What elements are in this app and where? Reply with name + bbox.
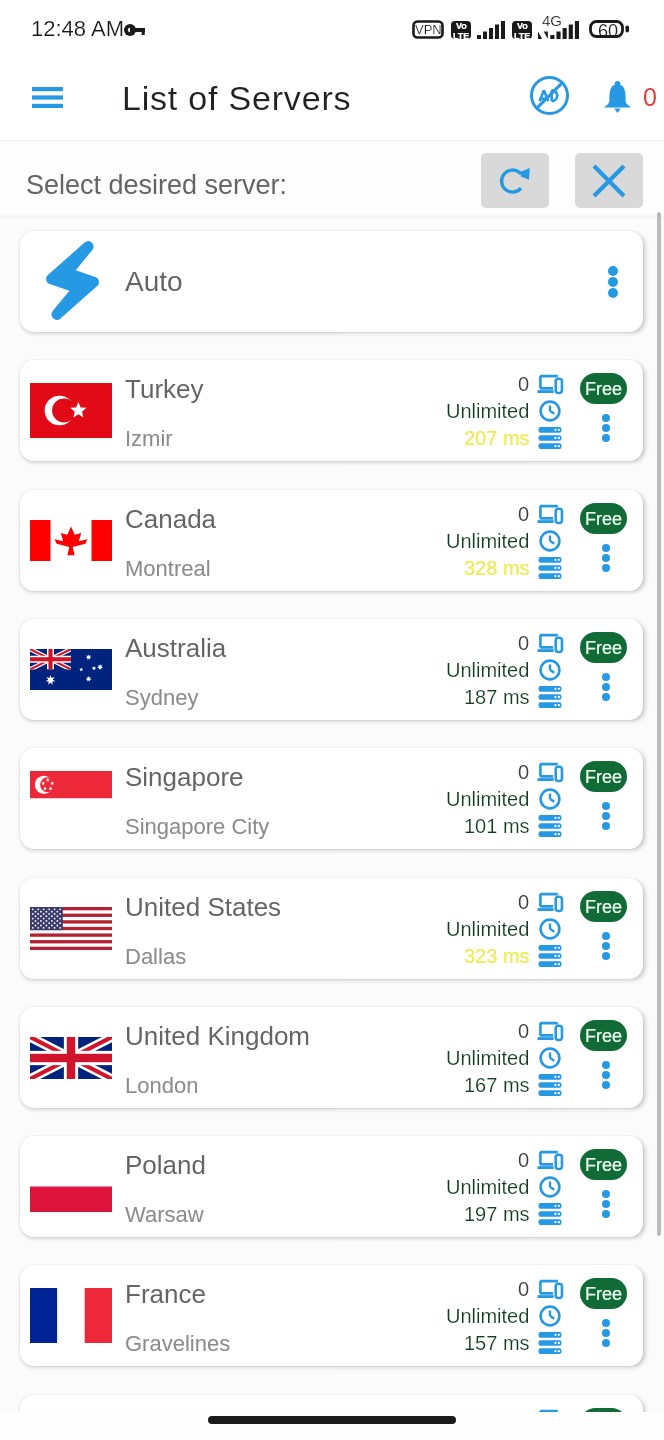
button[interactable]: Menu [10, 64, 84, 130]
staticText: Dallas [125, 944, 187, 969]
staticText: Singapore City [125, 814, 270, 839]
button[interactable]: Free [580, 761, 627, 792]
staticText: 0 [518, 1278, 530, 1300]
staticText: 323 ms [464, 945, 530, 967]
staticText: Warsaw [125, 1202, 204, 1227]
button[interactable]: More options [588, 664, 623, 710]
staticText: Australia [125, 633, 227, 662]
button[interactable]: Australia [20, 619, 643, 720]
button[interactable]: Free [580, 1408, 627, 1439]
button[interactable]: More options [588, 1181, 623, 1227]
staticText: 197 ms [464, 1203, 530, 1225]
button[interactable]: More options [588, 1052, 623, 1098]
staticText: Sydney [125, 685, 199, 710]
staticText: 12:48 AM [31, 16, 124, 41]
staticText: Unlimited [446, 918, 530, 940]
button[interactable]: Free [580, 1020, 627, 1051]
staticText: 0 [518, 1020, 530, 1042]
staticText: Canada [125, 504, 217, 533]
button[interactable]: Canada [20, 490, 643, 591]
staticText: 0 [518, 1149, 530, 1171]
button[interactable]: Free [580, 373, 627, 404]
staticText: London [125, 1073, 199, 1098]
staticText: Poland [125, 1150, 206, 1179]
button[interactable]: France [20, 1265, 643, 1366]
staticText: 101 ms [464, 815, 530, 837]
staticText: United Kingdom [125, 1021, 310, 1050]
button[interactable]: Free [580, 1278, 627, 1309]
staticText: Free [585, 897, 623, 917]
button[interactable]: Free [580, 503, 627, 534]
staticText: Unlimited [446, 1047, 530, 1069]
button[interactable]: Refresh [481, 153, 549, 208]
button[interactable]: More options [590, 231, 636, 332]
button[interactable]: Notifications [590, 64, 664, 130]
staticText: 0 [518, 761, 530, 783]
staticText: 60 [598, 21, 619, 41]
staticText: VPN [415, 22, 442, 37]
button[interactable]: Free [580, 1149, 627, 1180]
staticText: Unlimited [446, 1305, 530, 1327]
staticText: Montreal [125, 556, 211, 581]
staticText: LTE [514, 31, 531, 39]
staticText: 157 ms [464, 1332, 530, 1354]
button[interactable]: Remove ads [516, 62, 582, 128]
button[interactable]: More options [588, 923, 623, 969]
button[interactable]: Free [580, 632, 627, 663]
staticText: France [125, 1279, 206, 1308]
staticText: Unlimited [446, 530, 530, 552]
staticText: Free [585, 509, 623, 529]
staticText: 167 ms [464, 1074, 530, 1096]
staticText: Free [585, 767, 623, 787]
button[interactable]: Germany [20, 1395, 643, 1440]
button[interactable]: Turkey [20, 360, 643, 461]
button[interactable]: United States [20, 878, 643, 979]
button[interactable]: More options [588, 405, 623, 451]
staticText: Unlimited [446, 788, 530, 810]
staticText: Turkey [125, 374, 204, 403]
staticText: Izmir [125, 426, 173, 451]
staticText: Unlimited [446, 400, 530, 422]
staticText: 187 ms [464, 686, 530, 708]
button[interactable]: Close [575, 153, 643, 208]
staticText: United States [125, 892, 282, 921]
staticText: LTE [453, 31, 470, 39]
staticText: 0 [518, 373, 530, 395]
button[interactable]: Poland [20, 1136, 643, 1237]
button[interactable]: Free [580, 891, 627, 922]
staticText: 0 [643, 83, 657, 111]
button[interactable]: More options [588, 793, 623, 839]
staticText: Select desired server: [26, 170, 288, 200]
staticText: List of Servers [122, 79, 352, 117]
staticText: 0 [518, 503, 530, 525]
staticText: Singapore [125, 762, 244, 791]
staticText: Unlimited [446, 1176, 530, 1198]
staticText: Free [585, 379, 623, 399]
button[interactable]: Auto [20, 231, 643, 332]
staticText: Free [585, 1026, 623, 1046]
button[interactable]: More options [588, 535, 623, 581]
button[interactable]: More options [588, 1310, 623, 1356]
staticText: Free [585, 1284, 623, 1304]
staticText: 328 ms [464, 557, 530, 579]
staticText: Vo [456, 21, 467, 31]
button[interactable]: United Kingdom [20, 1007, 643, 1108]
button[interactable]: Singapore [20, 748, 643, 849]
staticText: 0 [518, 632, 530, 654]
staticText: 0 [518, 891, 530, 913]
staticText: 207 ms [464, 427, 530, 449]
staticText: Free [585, 1155, 623, 1175]
staticText: 4G [542, 12, 563, 29]
staticText: Vo [517, 21, 528, 31]
staticText: Germany [125, 1409, 232, 1438]
staticText: Gravelines [125, 1331, 231, 1356]
staticText: Free [585, 638, 623, 658]
staticText: Unlimited [446, 659, 530, 681]
staticText: Auto [125, 266, 183, 297]
